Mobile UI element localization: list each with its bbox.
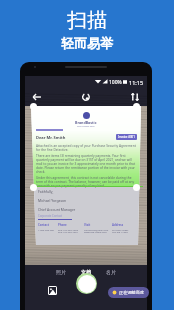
staticText: 正在调整亮度 (119, 290, 145, 295)
staticText: 11:15 (129, 79, 144, 86)
staticText: 轻而易举 (61, 35, 113, 51)
staticText: Contact (38, 223, 49, 227)
staticText: 扫描 (67, 8, 107, 33)
button[interactable]: 文档 (79, 268, 93, 276)
staticText: Under this agreement, this contract is n… (36, 176, 137, 188)
staticText: Faithfully, (38, 189, 54, 194)
staticText: your slogan here (77, 125, 95, 128)
staticText: Phone (58, 223, 67, 227)
staticText: Invoice #001 (118, 135, 135, 139)
staticText: Michael Yorgason (38, 198, 67, 203)
staticText: Address (112, 223, 124, 227)
button[interactable]: 照片 (54, 268, 68, 276)
staticText: 文档 (81, 269, 91, 275)
button[interactable]: Shutter (76, 273, 97, 294)
button[interactable]: Crop handle (133, 184, 140, 191)
button[interactable]: Crop handle (30, 103, 37, 110)
button[interactable]: 正在调整亮度 (108, 287, 149, 298)
button[interactable]: 名片 (104, 268, 118, 276)
staticText: 555-123-456-7890 555-123-456-7891 (58, 228, 79, 234)
staticText: contactme@mail.com www.site-name.com (84, 228, 109, 234)
staticText: Attached is an accepted copy of your Pur… (36, 144, 137, 152)
staticText: 名片 (106, 269, 116, 275)
button[interactable]: Gallery (48, 286, 57, 295)
staticText: There are items (3) remaining quarterly … (36, 154, 137, 174)
button[interactable]: Crop handle (30, 184, 37, 191)
staticText: 100% (109, 79, 122, 86)
staticText: 20 Main Street City Zip 17366 (112, 228, 129, 234)
button[interactable]: Crop handle (133, 103, 140, 110)
button[interactable]: Flash (79, 90, 93, 104)
staticText: 照片 (56, 269, 66, 275)
button[interactable]: Sort (128, 90, 142, 104)
staticText: BrandBastic (75, 120, 97, 125)
staticText: Visit (84, 223, 91, 227)
button[interactable]: Back (30, 90, 44, 104)
staticText: Corporate Contact (38, 214, 63, 218)
staticText: 1-800-000-000 (38, 228, 54, 231)
staticText: Dear Mr. Smith (36, 135, 66, 140)
staticText: Chief Account Manager (38, 207, 76, 212)
